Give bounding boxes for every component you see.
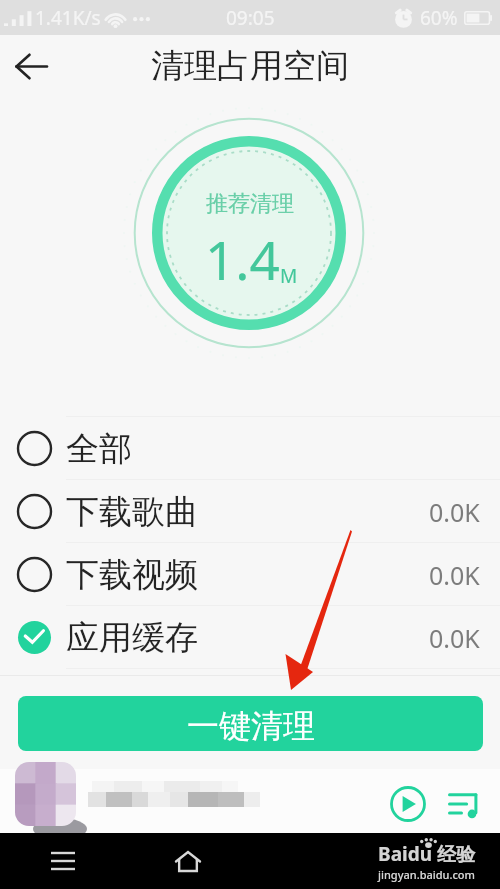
staticText: 应用缓存 [66,617,198,659]
staticText: 一键清理 [187,706,315,746]
staticText: 全部 [66,428,132,470]
button[interactable]: 下载歌曲 [0,480,500,543]
button[interactable]: 一键清理 [18,696,483,751]
staticText: 清理占用空间 [151,45,349,87]
button[interactable]: 应用缓存 [0,606,500,669]
button[interactable]: Album art [15,762,76,826]
staticText: 0.0K [429,621,480,655]
staticText: jingyan.baidu.com [378,867,475,882]
button[interactable]: Playlist [443,785,483,825]
staticText: 09:05 [226,5,275,31]
staticText: 下载视频 [66,554,198,596]
staticText: Baidu 经验 [378,841,475,867]
button[interactable]: 下载视频 [0,543,500,606]
button[interactable]: Home [125,833,250,889]
button[interactable]: Back [8,43,54,89]
staticText: 0.0K [429,558,480,592]
staticText: 下载歌曲 [66,491,198,533]
staticText: 推荐清理 [206,190,294,218]
button[interactable]: Play [387,783,429,825]
staticText: M [280,263,298,289]
staticText: 60% [420,5,458,31]
button[interactable]: Menu [0,833,125,889]
staticText: 1.41K/s [35,5,101,31]
button[interactable]: 全部 [0,417,500,480]
staticText: 1.4 [205,223,280,295]
staticText: 0.0K [429,495,480,529]
